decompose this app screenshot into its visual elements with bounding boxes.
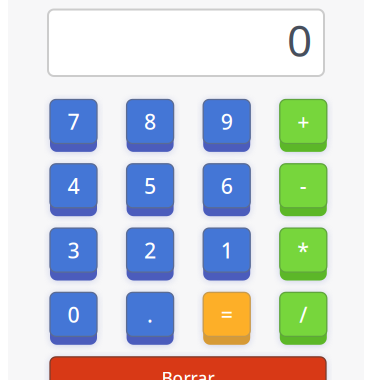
staticText: 3 — [67, 236, 79, 264]
staticText: 5 — [144, 172, 156, 200]
staticText: 1 — [221, 236, 233, 264]
button[interactable]: 4 — [50, 164, 97, 216]
button[interactable]: 5 — [127, 164, 174, 216]
staticText: 8 — [144, 107, 156, 136]
button[interactable]: + — [280, 99, 327, 152]
button[interactable]: 7 — [50, 99, 97, 152]
staticText: 4 — [67, 172, 79, 200]
button[interactable]: Borrar — [50, 357, 326, 380]
button[interactable]: * — [280, 228, 327, 280]
staticText: 9 — [221, 107, 233, 136]
staticText: . — [147, 300, 153, 328]
staticText: = — [221, 300, 233, 328]
button[interactable]: / — [280, 292, 327, 345]
button[interactable]: 3 — [50, 228, 97, 280]
staticText: 0 — [287, 10, 312, 69]
staticText: Borrar — [161, 366, 214, 380]
staticText: 6 — [221, 172, 233, 200]
button[interactable]: 6 — [203, 164, 250, 216]
button[interactable]: 1 — [203, 228, 250, 280]
staticText: - — [300, 172, 307, 200]
staticText: + — [297, 107, 309, 136]
staticText: 2 — [144, 236, 156, 264]
button[interactable]: 8 — [127, 99, 174, 152]
button[interactable]: 2 — [127, 228, 174, 280]
staticText: * — [297, 236, 309, 264]
button[interactable]: = — [203, 292, 250, 345]
button[interactable]: 9 — [203, 99, 250, 152]
button[interactable]: - — [280, 164, 327, 216]
staticText: 7 — [67, 107, 79, 136]
button[interactable]: . — [127, 292, 174, 345]
staticText: / — [299, 300, 307, 328]
staticText: 0 — [67, 300, 79, 328]
button[interactable]: 0 — [50, 292, 97, 345]
